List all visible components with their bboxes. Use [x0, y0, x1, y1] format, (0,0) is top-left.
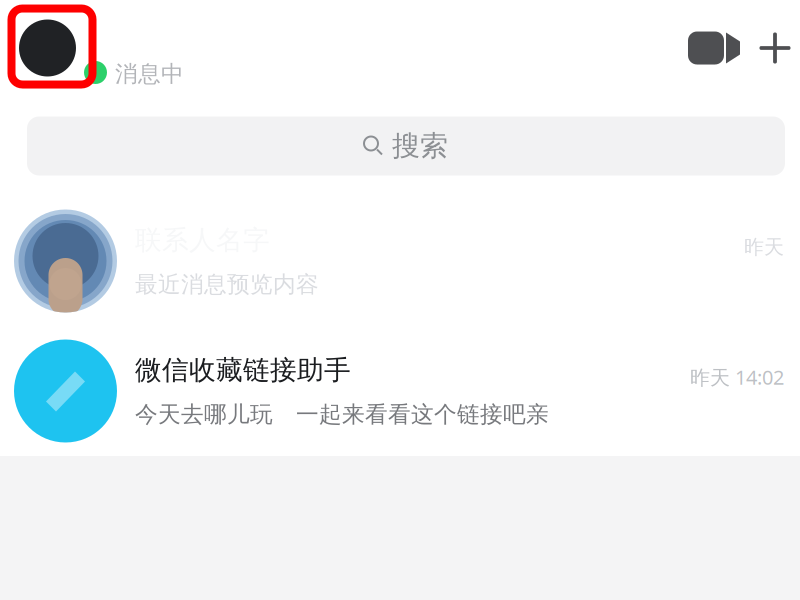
button[interactable]: 搜索: [0, 116, 800, 175]
staticText: 消息中: [115, 60, 184, 88]
staticText: 今天去哪儿玩 一起来看看这个链接吧亲: [135, 400, 549, 428]
button[interactable]: New message: [758, 31, 800, 65]
staticText: 最近消息预览内容: [135, 270, 319, 298]
button[interactable]: New video call: [687, 28, 758, 68]
button[interactable]: 联系人名字: [0, 196, 800, 326]
staticText: 微信收藏链接助手: [135, 354, 351, 386]
staticText: 联系人名字: [135, 224, 270, 256]
staticText: 昨天: [744, 235, 784, 259]
staticText: 搜索: [392, 129, 448, 163]
button[interactable]: 微信收藏链接助手: [0, 326, 800, 456]
button[interactable]: Profile: [0, 16, 112, 79]
staticText: 昨天 14:02: [690, 364, 784, 390]
